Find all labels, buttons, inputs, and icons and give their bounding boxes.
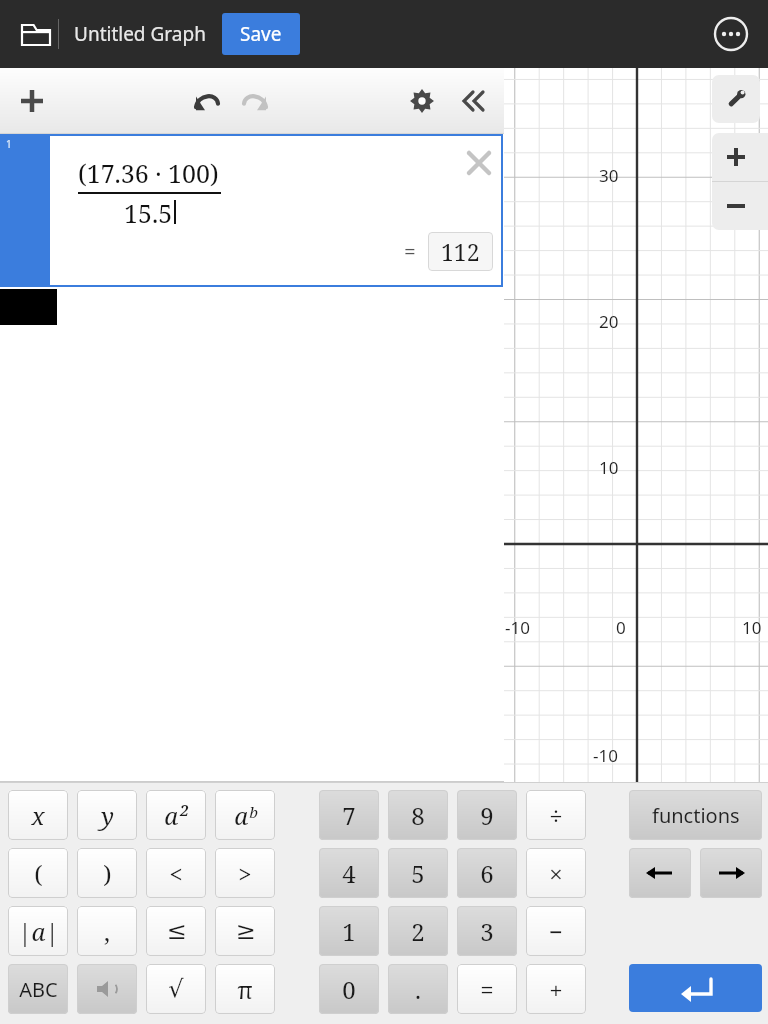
button[interactable]: Untitled Graph (74, 21, 206, 47)
button[interactable]: × (526, 848, 586, 898)
staticText: 0 (616, 616, 626, 639)
button[interactable] (77, 964, 137, 1014)
button[interactable]: x (8, 790, 68, 840)
button[interactable]: ÷ (526, 790, 586, 840)
staticText: |a| (18, 915, 59, 948)
staticText: 112 (441, 236, 480, 267)
staticText: x (31, 799, 45, 832)
button[interactable]: 3 (457, 906, 517, 956)
button[interactable]: Save (222, 13, 300, 55)
staticText: 20 (599, 310, 619, 333)
staticText: 0 (342, 973, 356, 1006)
staticText: = (480, 973, 494, 1006)
button[interactable]: ) (77, 848, 137, 898)
staticText: 9 (480, 799, 494, 832)
button[interactable]: Delete expression (462, 146, 496, 180)
button[interactable]: 1 (319, 906, 379, 956)
button[interactable]: Undo (185, 79, 229, 123)
staticText: 6 (480, 857, 494, 890)
staticText: -10 (505, 616, 530, 639)
button[interactable]: More options (708, 11, 754, 57)
button[interactable]: 2 (388, 906, 448, 956)
button[interactable]: Redo (233, 79, 277, 123)
button[interactable]: 1 (0, 134, 503, 287)
staticText: ≤ (166, 917, 187, 945)
staticText: Save (240, 21, 282, 47)
staticText: √ (168, 975, 184, 1003)
staticText: 8 (411, 799, 425, 832)
staticText: 15.5 (124, 196, 173, 230)
button[interactable]: 6 (457, 848, 517, 898)
staticText: × (549, 857, 563, 890)
staticText: y (101, 799, 114, 832)
button[interactable]: 8 (388, 790, 448, 840)
staticText: ) (103, 857, 112, 890)
staticText: 7 (342, 799, 356, 832)
staticText: a² (164, 799, 188, 832)
button[interactable]: Open folder (14, 12, 58, 56)
button[interactable]: π (215, 964, 275, 1014)
staticText: > (238, 857, 252, 890)
button[interactable]: Move right (700, 848, 762, 898)
staticText: 1 (342, 915, 356, 948)
button[interactable]: 112 (428, 232, 493, 271)
staticText: 30 (599, 164, 619, 187)
staticText: 4 (342, 857, 356, 890)
staticText: − (549, 915, 563, 948)
staticText: ÷ (549, 799, 563, 832)
button[interactable]: − (526, 906, 586, 956)
button[interactable]: ( (8, 848, 68, 898)
staticText: ABC (19, 976, 58, 1003)
staticText: , (104, 915, 110, 948)
button[interactable]: . (388, 964, 448, 1014)
staticText: 5 (411, 857, 425, 890)
staticText: + (549, 973, 563, 1006)
button[interactable]: Graph settings (712, 75, 760, 123)
staticText: -10 (593, 744, 618, 767)
staticText: 1 (6, 137, 12, 151)
button[interactable]: Zoom in (712, 133, 760, 181)
button[interactable]: |a| (8, 906, 68, 956)
button[interactable]: 7 (319, 790, 379, 840)
button[interactable]: ≥ (215, 906, 275, 956)
button[interactable]: functions (629, 790, 762, 840)
button[interactable]: = (457, 964, 517, 1014)
button[interactable]: < (146, 848, 206, 898)
button[interactable]: y (77, 790, 137, 840)
button[interactable]: + (526, 964, 586, 1014)
button[interactable]: √ (146, 964, 206, 1014)
button[interactable]: Settings (400, 79, 444, 123)
button[interactable]: Enter (629, 964, 762, 1012)
staticText: (17.36 · 100) (78, 156, 219, 190)
button[interactable]: 9 (457, 790, 517, 840)
button[interactable]: 0 (319, 964, 379, 1014)
button[interactable]: Move left (629, 848, 691, 898)
staticText: ≥ (235, 917, 256, 945)
button[interactable]: 4 (319, 848, 379, 898)
button[interactable]: Zoom out (712, 182, 760, 230)
staticText: = (404, 237, 416, 266)
staticText: 10 (742, 616, 762, 639)
button[interactable]: Add expression (10, 79, 54, 123)
staticText: . (415, 973, 421, 1006)
staticText: ( (34, 857, 43, 890)
button[interactable]: 5 (388, 848, 448, 898)
button[interactable]: > (215, 848, 275, 898)
staticText: 2 (411, 915, 425, 948)
button[interactable]: ≤ (146, 906, 206, 956)
staticText: < (169, 857, 183, 890)
staticText: aᵇ (234, 799, 257, 832)
button[interactable]: a² (146, 790, 206, 840)
button[interactable]: ABC (8, 964, 68, 1014)
staticText: 10 (599, 456, 619, 479)
staticText: functions (652, 802, 740, 829)
staticText: π (237, 973, 253, 1006)
staticText: 3 (480, 915, 494, 948)
button[interactable]: , (77, 906, 137, 956)
button[interactable]: Collapse panel (450, 79, 494, 123)
button[interactable]: aᵇ (215, 790, 275, 840)
